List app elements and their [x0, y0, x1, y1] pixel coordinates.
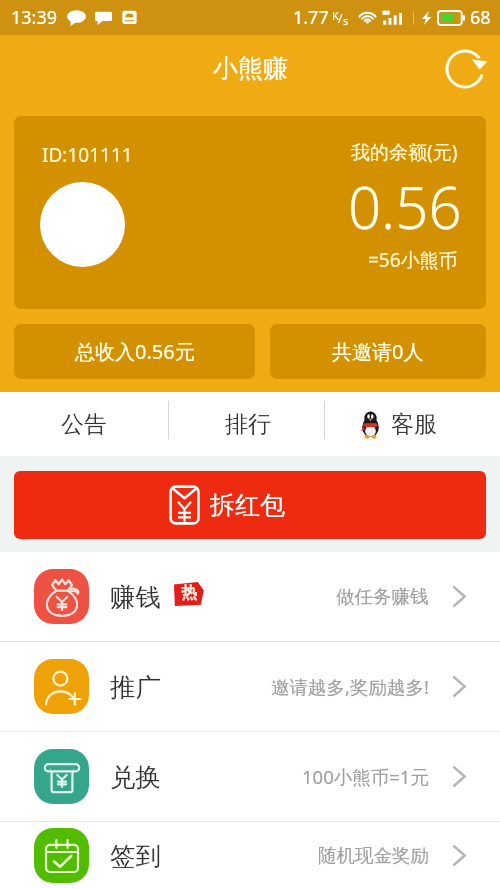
staticText: 小熊赚: [213, 53, 288, 84]
staticText: 总收入0.56元: [75, 338, 195, 365]
button[interactable]: ID:101111: [14, 116, 486, 309]
staticText: 13:39: [11, 5, 58, 30]
button[interactable]: 客服: [325, 392, 500, 456]
staticText: 推广: [110, 671, 161, 703]
staticText: 随机现金奖励: [318, 844, 429, 867]
staticText: 客服: [391, 410, 437, 439]
button[interactable]: 公告: [0, 392, 168, 456]
staticText: =56小熊币: [368, 247, 458, 273]
button[interactable]: 签到: [0, 822, 500, 889]
staticText: 1.77: [293, 5, 329, 30]
staticText: s: [343, 13, 349, 28]
staticText: K: [332, 8, 339, 23]
button[interactable]: 拆红包: [14, 471, 486, 539]
staticText: 68: [470, 5, 491, 30]
button[interactable]: 赚钱: [0, 552, 500, 641]
staticText: 邀请越多,奖励越多!: [271, 674, 429, 699]
staticText: 做任务赚钱: [336, 585, 429, 608]
button[interactable]: 兑换: [0, 732, 500, 821]
button[interactable]: 推广: [0, 642, 500, 731]
button[interactable]: 共邀请0人: [270, 324, 486, 379]
staticText: 拆红包: [210, 490, 285, 521]
staticText: 公告: [61, 410, 107, 439]
staticText: 共邀请0人: [332, 338, 424, 365]
staticText: 赚钱: [110, 581, 161, 613]
staticText: 0.56: [348, 167, 462, 246]
staticText: /: [338, 10, 343, 26]
staticText: 100小熊币=1元: [302, 764, 429, 789]
staticText: 排行: [225, 410, 271, 439]
staticText: ID:101111: [42, 142, 133, 168]
staticText: 热: [181, 583, 197, 603]
staticText: 我的余额(元): [351, 139, 458, 165]
button[interactable]: 排行: [169, 392, 324, 456]
staticText: 签到: [110, 840, 161, 872]
button[interactable]: Refresh: [441, 45, 489, 93]
staticText: 兑换: [110, 761, 161, 793]
button[interactable]: 总收入0.56元: [14, 324, 255, 379]
